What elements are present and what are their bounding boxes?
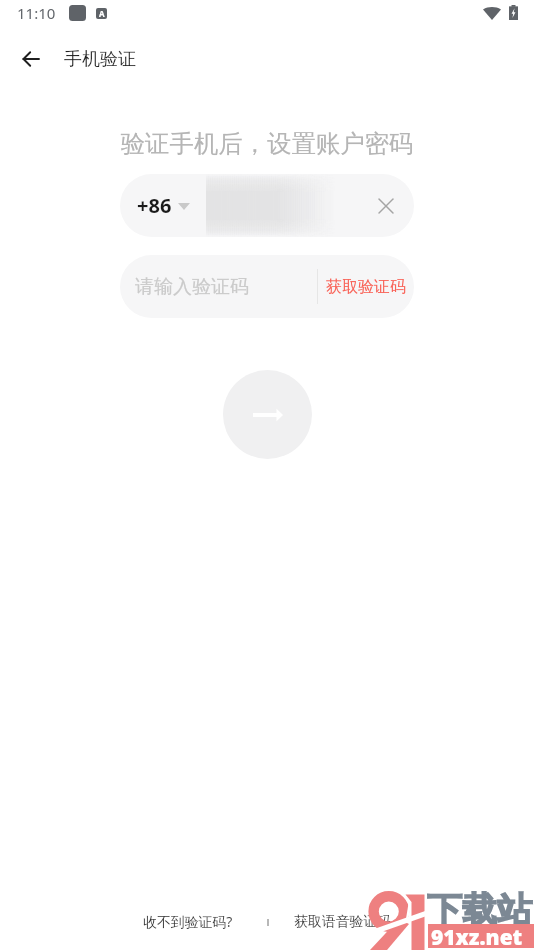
- button[interactable]: 收不到验证码?: [143, 912, 233, 931]
- staticText: 获取语音验证码: [294, 913, 392, 931]
- button[interactable]: +86: [120, 174, 414, 237]
- button[interactable]: 获取语音验证码: [294, 913, 392, 931]
- staticText: 下载站: [427, 888, 532, 932]
- staticText: 请输入验证码: [135, 275, 249, 299]
- button[interactable]: Back: [8, 36, 54, 82]
- staticText: 获取验证码: [326, 277, 406, 297]
- staticText: 手机验证: [64, 48, 136, 71]
- staticText: 收不到验证码?: [143, 912, 233, 931]
- staticText: 11:10: [17, 3, 56, 23]
- button[interactable]: Clear: [369, 189, 403, 223]
- staticText: 91xz.net: [431, 923, 523, 950]
- staticText: A: [99, 8, 105, 19]
- button[interactable]: Next: [223, 370, 312, 459]
- staticText: 验证手机后，设置账户密码: [0, 129, 534, 160]
- staticText: +86: [137, 192, 172, 219]
- button[interactable]: 获取验证码: [318, 255, 414, 318]
